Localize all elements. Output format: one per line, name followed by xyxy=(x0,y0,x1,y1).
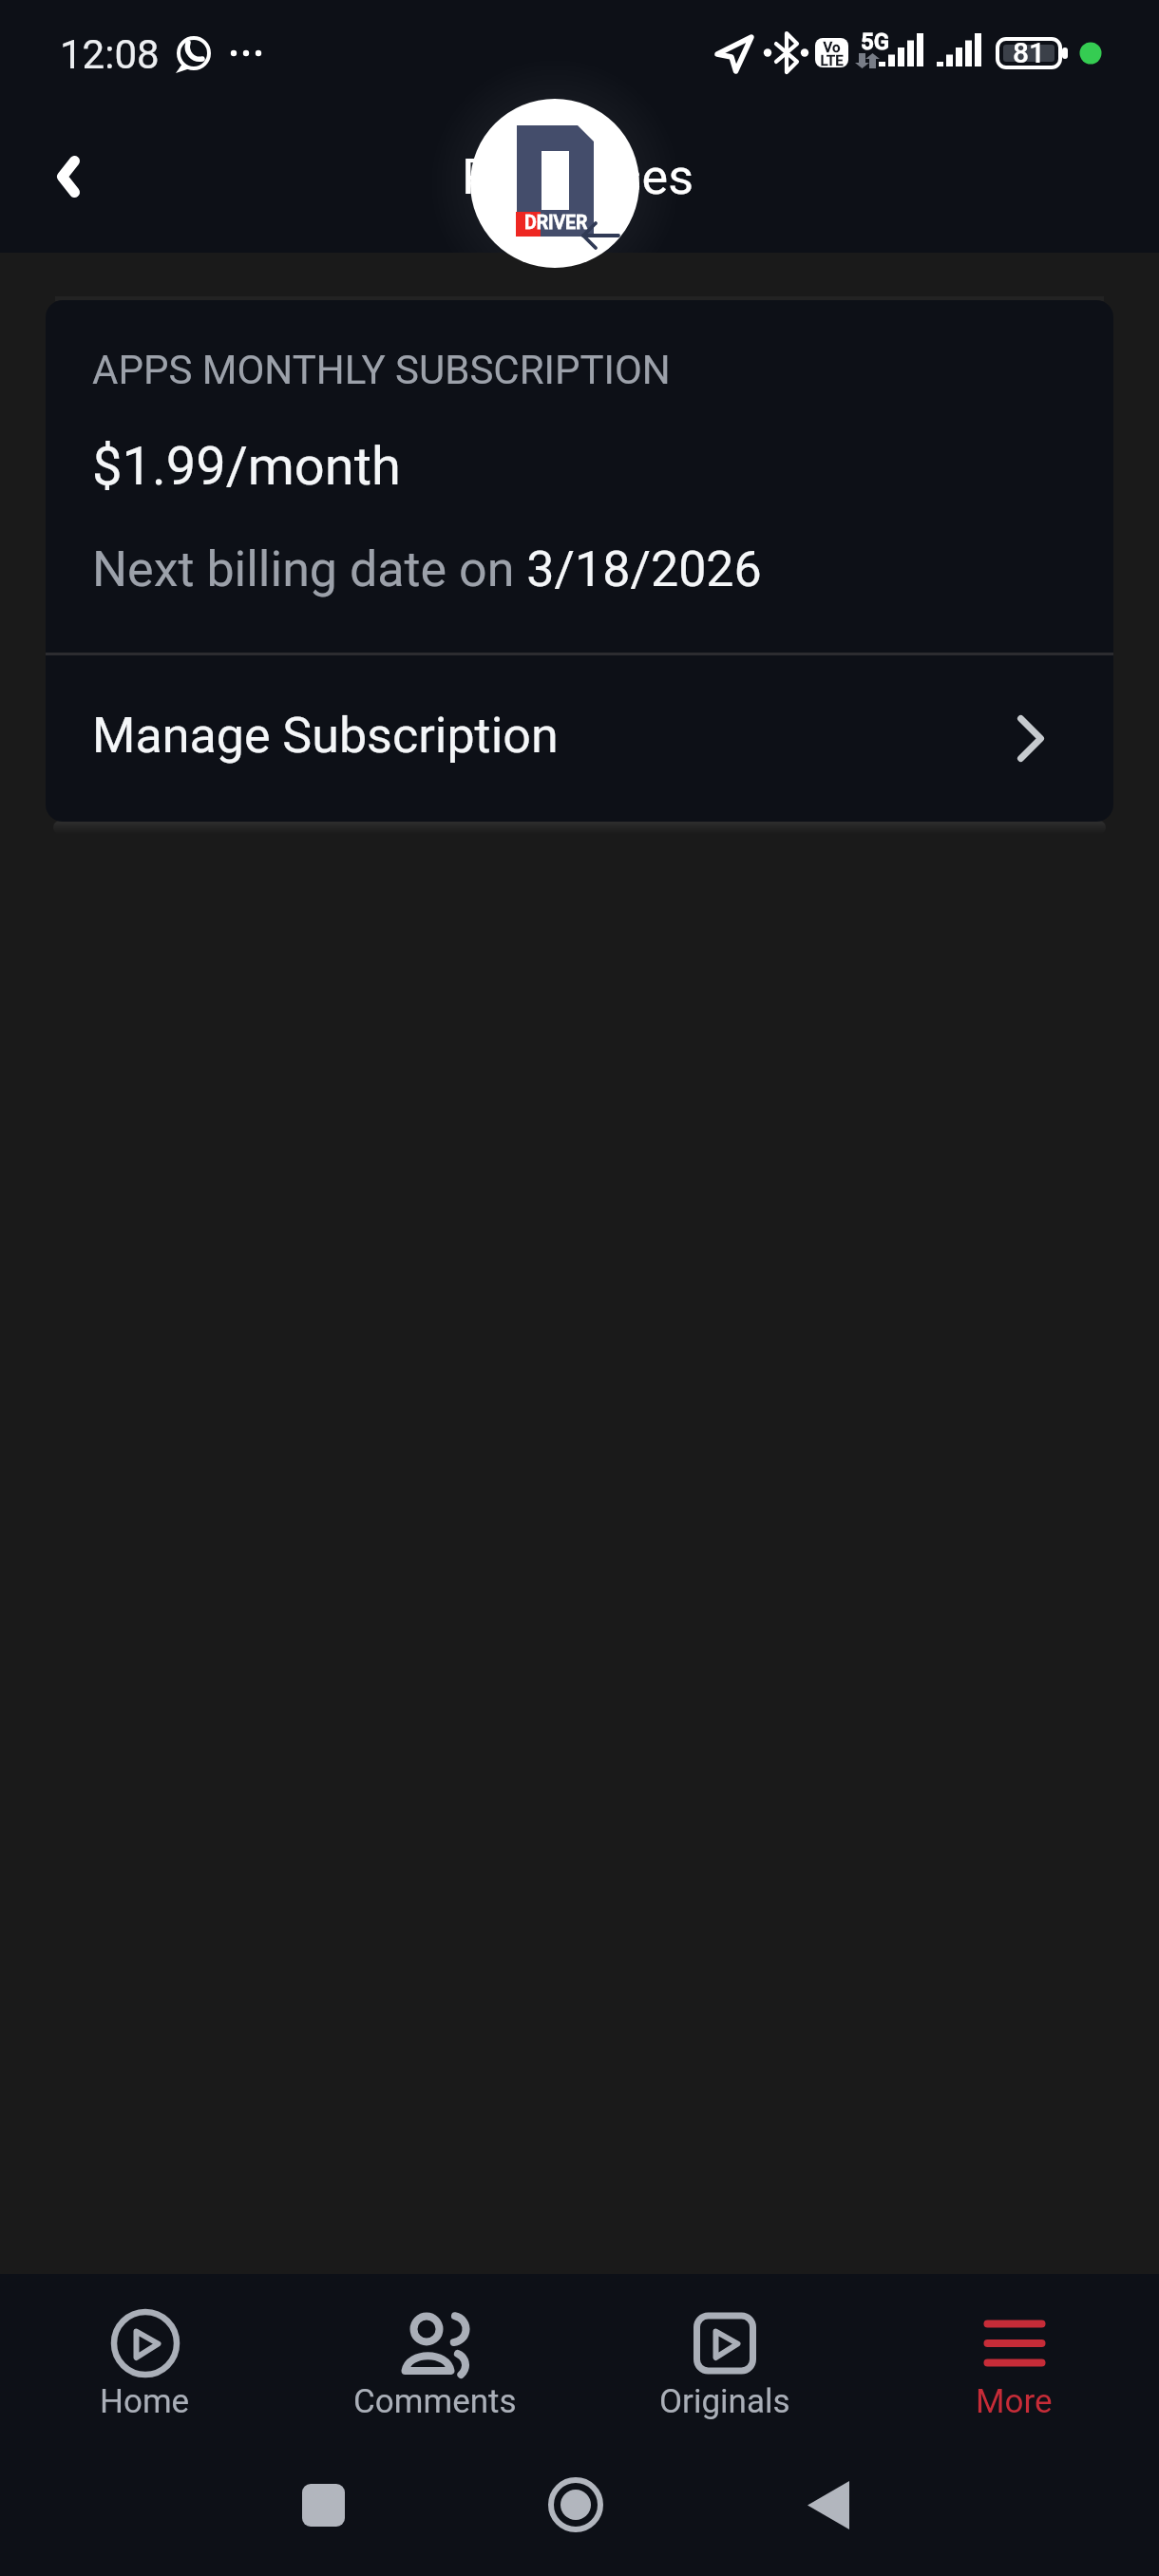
staticText: DRIVER xyxy=(524,212,588,234)
staticText: Next billing date on 3/18/2026 xyxy=(92,540,762,598)
button[interactable]: Back xyxy=(781,2457,876,2552)
button[interactable]: Originals xyxy=(579,2274,869,2432)
staticText: $1.99/month xyxy=(92,435,401,498)
button[interactable]: More xyxy=(869,2274,1159,2432)
staticText: 81 xyxy=(998,36,1059,69)
button[interactable]: Manage Subscription xyxy=(46,655,1113,822)
staticText: APPS MONTHLY SUBSCRIPTION xyxy=(92,347,671,393)
staticText: More xyxy=(976,2382,1053,2421)
button[interactable]: Recents xyxy=(275,2457,370,2552)
staticText: 12:08 xyxy=(60,31,160,78)
staticText: Vo xyxy=(815,39,848,56)
button[interactable]: Comments xyxy=(290,2274,579,2432)
staticText: Purchases xyxy=(462,148,694,206)
staticText: Originals xyxy=(659,2382,790,2421)
button[interactable]: Home xyxy=(528,2457,623,2552)
button[interactable]: Home xyxy=(0,2274,290,2432)
button[interactable]: Back xyxy=(18,126,118,226)
staticText: LTE xyxy=(815,52,848,69)
staticText: 5G xyxy=(861,28,889,55)
staticText: Manage Subscription xyxy=(92,707,559,765)
staticText: Home xyxy=(100,2382,190,2421)
staticText: Comments xyxy=(353,2382,517,2421)
